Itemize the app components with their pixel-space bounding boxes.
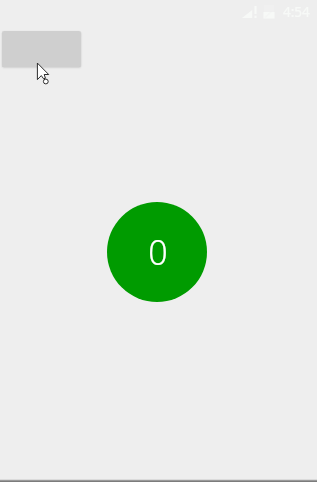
- button[interactable]: Tap to count: [107, 202, 207, 302]
- button[interactable]: Reset counter: [2, 31, 81, 67]
- staticText: 4:54: [283, 3, 310, 19]
- staticText: 0: [148, 229, 168, 275]
